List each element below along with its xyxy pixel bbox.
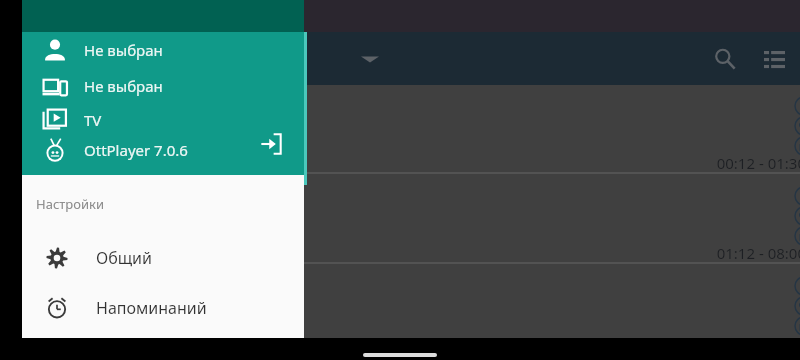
button[interactable]: Не выбран <box>22 70 304 102</box>
staticText: Напоминаний <box>96 297 207 319</box>
button[interactable]: Change layout <box>750 35 798 83</box>
staticText: 01:12 - 08:00 <box>702 243 800 263</box>
button[interactable]: OttPlayer 7.0.6 <box>22 134 304 166</box>
staticText: 00:12 - 01:30 <box>702 153 800 173</box>
staticText: TV <box>84 110 102 130</box>
button[interactable]: Select group <box>342 32 398 85</box>
button[interactable]: Не выбран <box>22 34 304 66</box>
staticText: Общий <box>96 247 152 269</box>
button[interactable]: Общий <box>22 233 304 283</box>
button: Настройки <box>22 175 304 233</box>
staticText: Не выбран <box>84 40 163 60</box>
button[interactable]: Search <box>701 35 749 83</box>
staticText: OttPlayer 7.0.6 <box>84 140 188 160</box>
button[interactable]: Напоминаний <box>22 283 304 333</box>
button[interactable] <box>22 265 800 355</box>
button[interactable]: 00:12 - 01:30 <box>22 85 800 175</box>
button[interactable]: 01:12 - 08:00 <box>22 175 800 265</box>
button[interactable]: Log out <box>249 122 293 166</box>
staticText: Настройки <box>36 195 105 213</box>
button[interactable]: TV <box>22 104 304 136</box>
staticText: Не выбран <box>84 76 163 96</box>
